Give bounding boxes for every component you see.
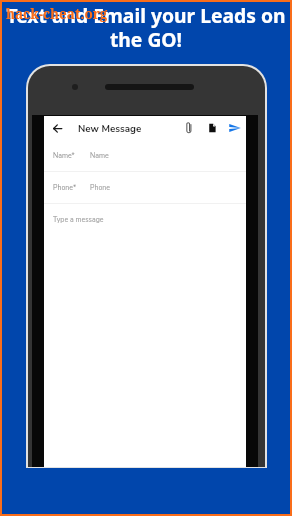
- button[interactable]: Templates: [203, 116, 221, 140]
- button[interactable]: Send: [226, 116, 244, 140]
- button[interactable]: Back: [48, 119, 66, 137]
- staticText: Phone: [90, 183, 110, 193]
- staticText: Phone*: [53, 183, 90, 193]
- staticText: Name*: [53, 151, 90, 161]
- staticText: Text and Email your Leads on the GO!: [2, 2, 290, 52]
- staticText: Name: [90, 151, 109, 161]
- staticText: New Message: [78, 122, 142, 135]
- button[interactable]: Name*: [44, 140, 246, 171]
- button[interactable]: Type a message: [44, 204, 246, 244]
- button[interactable]: Phone*: [44, 172, 246, 203]
- staticText: Type a message: [53, 215, 104, 225]
- button[interactable]: New Message: [78, 116, 142, 140]
- staticText: hack-cheat.org: [6, 5, 108, 23]
- button[interactable]: Attach file: [180, 116, 198, 140]
